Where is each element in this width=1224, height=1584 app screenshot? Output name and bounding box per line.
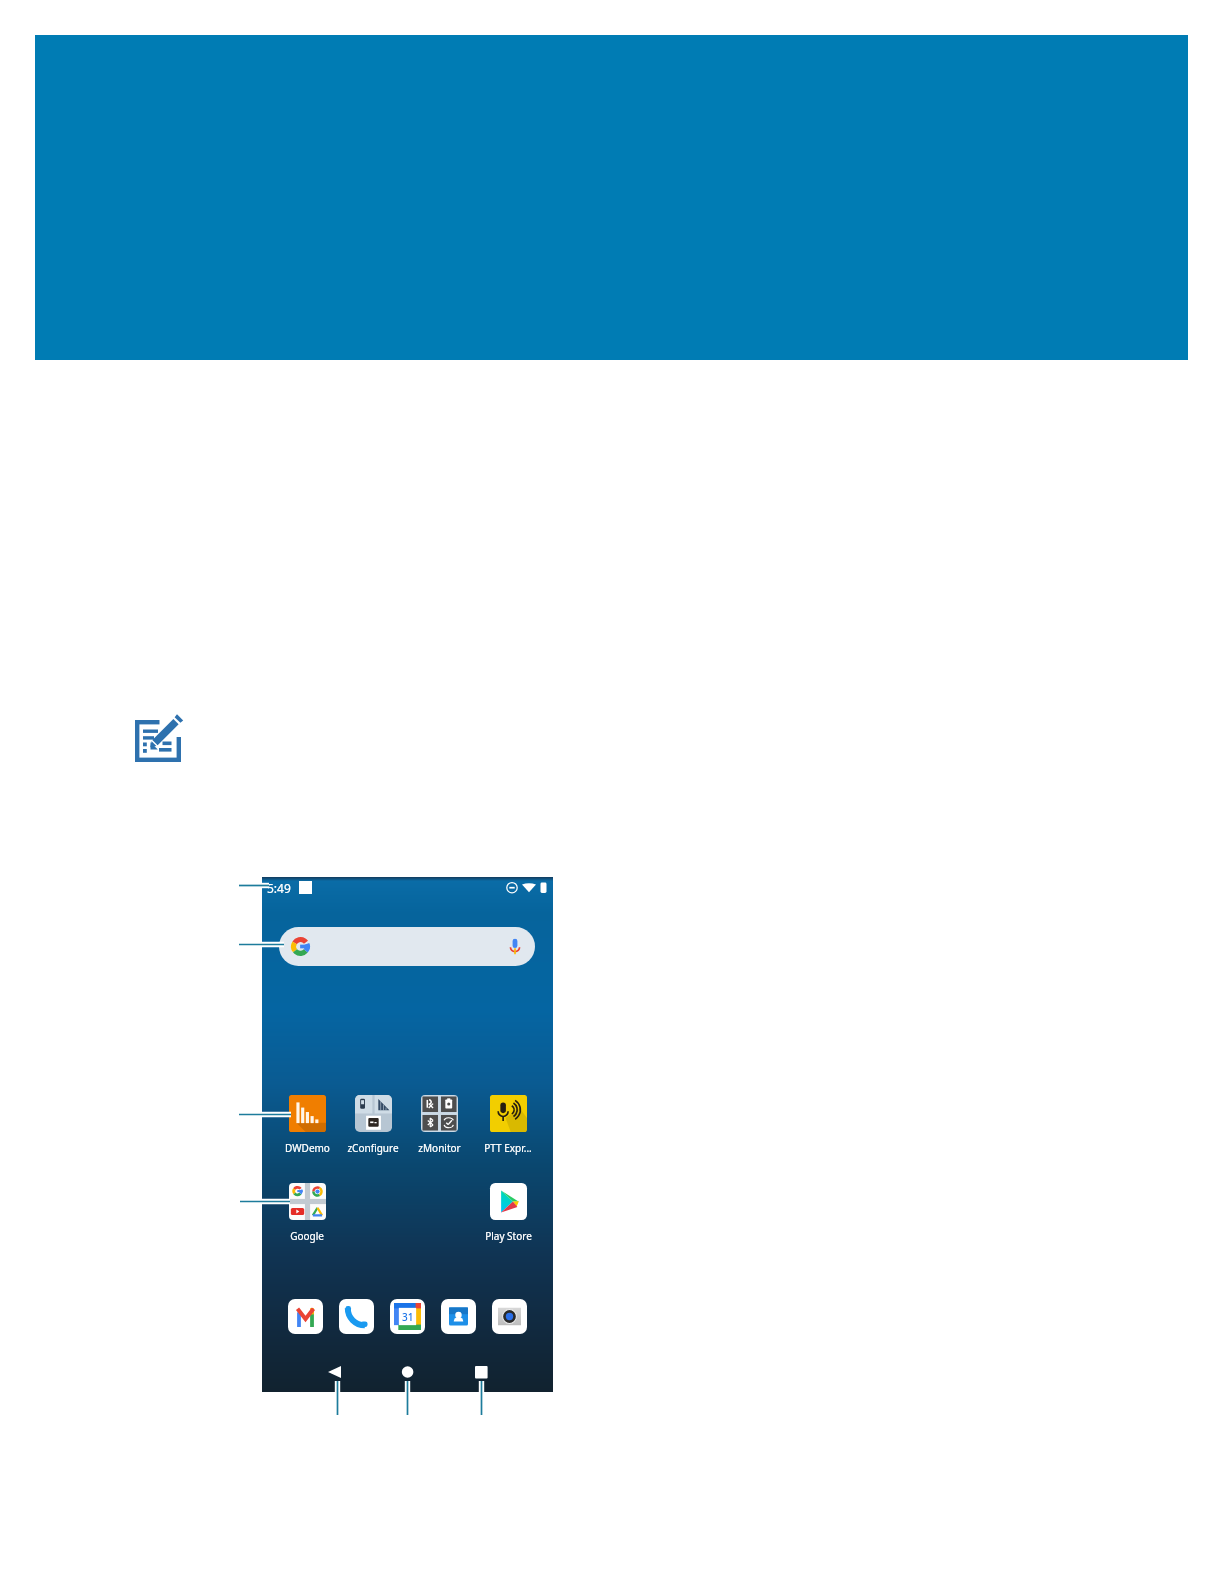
button[interactable]: Google bbox=[270, 1183, 344, 1243]
button[interactable]: Calendar bbox=[390, 1299, 425, 1334]
staticText: DWDemo bbox=[285, 1141, 330, 1155]
button[interactable]: zMonitor bbox=[402, 1095, 476, 1155]
button[interactable]: Phone bbox=[339, 1299, 374, 1334]
staticText: zMonitor bbox=[418, 1141, 461, 1155]
staticText: Google bbox=[290, 1229, 324, 1243]
button[interactable]: Contacts bbox=[441, 1299, 476, 1334]
button[interactable]: Play Store bbox=[471, 1183, 545, 1243]
staticText: PTT Expr... bbox=[484, 1141, 532, 1155]
button[interactable]: Home bbox=[397, 1362, 417, 1382]
staticText: 5:49 bbox=[267, 880, 291, 896]
staticText: zConfigure bbox=[347, 1141, 399, 1155]
button[interactable]: Recent apps bbox=[471, 1362, 491, 1382]
button[interactable]: PTT Expr... bbox=[471, 1095, 545, 1155]
staticText: 31 bbox=[402, 1310, 414, 1324]
staticText: Play Store bbox=[485, 1229, 532, 1243]
button[interactable]: DWDemo bbox=[270, 1095, 344, 1155]
button[interactable]: Gmail bbox=[288, 1299, 323, 1334]
button[interactable]: Camera bbox=[492, 1299, 527, 1334]
button[interactable] bbox=[279, 927, 535, 966]
button[interactable]: Back bbox=[324, 1362, 344, 1382]
button[interactable]: zConfigure bbox=[336, 1095, 410, 1155]
